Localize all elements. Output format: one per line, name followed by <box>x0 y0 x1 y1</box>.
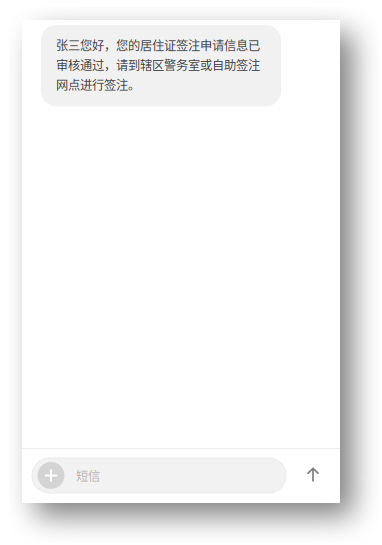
staticText: 张三您好，您的居住证签注申请信息已审核通过，请到辖区警务室或自助签注网点进行签注… <box>56 36 260 93</box>
staticText: 短信 <box>76 467 100 484</box>
button[interactable]: Add attachment <box>32 458 70 493</box>
button[interactable]: Send <box>290 459 336 491</box>
